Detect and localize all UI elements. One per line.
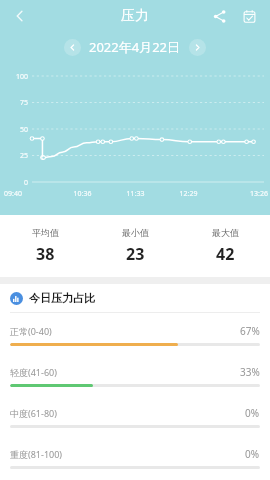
staticText: 最小值 <box>122 227 149 238</box>
staticText: 压力 <box>121 7 149 25</box>
staticText: 正常(0-40) <box>10 325 240 337</box>
staticText: 12:29 <box>162 189 215 199</box>
button[interactable]: Previous day <box>64 39 81 56</box>
button[interactable]: 正常(0-40) <box>0 313 270 354</box>
staticText: 中度(61-80) <box>10 407 245 419</box>
staticText: 09:40 <box>4 189 56 199</box>
button[interactable]: 最小值 <box>90 227 180 265</box>
staticText: 33% <box>240 365 260 379</box>
button[interactable]: Calendar <box>234 1 264 31</box>
staticText: 42 <box>216 243 235 265</box>
staticText: 2022年4月22日 <box>89 38 181 56</box>
staticText: 38 <box>36 243 55 265</box>
button[interactable]: 重度(81-100) <box>0 436 270 477</box>
staticText: 今日压力占比 <box>29 291 95 305</box>
staticText: 轻度(41-60) <box>10 366 240 378</box>
staticText: 0 <box>4 178 28 188</box>
button[interactable]: 中度(61-80) <box>0 395 270 436</box>
staticText: 平均值 <box>32 227 59 238</box>
button[interactable]: Next day <box>189 39 206 56</box>
staticText: 23 <box>126 243 145 265</box>
button[interactable]: 轻度(41-60) <box>0 354 270 395</box>
staticText: 50 <box>4 125 28 135</box>
button[interactable]: Back <box>4 0 36 32</box>
staticText: 0% <box>245 406 260 420</box>
staticText: 100 <box>4 72 28 82</box>
staticText: 10:36 <box>56 189 109 199</box>
button[interactable]: Share <box>204 1 234 31</box>
staticText: 75 <box>4 98 28 108</box>
staticText: 13:26 <box>215 189 268 199</box>
staticText: 重度(81-100) <box>10 448 245 460</box>
staticText: 最大值 <box>212 227 239 238</box>
button[interactable]: 最大值 <box>180 227 270 265</box>
staticText: 25 <box>4 151 28 161</box>
staticText: 11:33 <box>109 189 162 199</box>
button[interactable]: 平均值 <box>0 227 90 265</box>
staticText: 0% <box>245 447 260 461</box>
staticText: 67% <box>240 324 260 338</box>
